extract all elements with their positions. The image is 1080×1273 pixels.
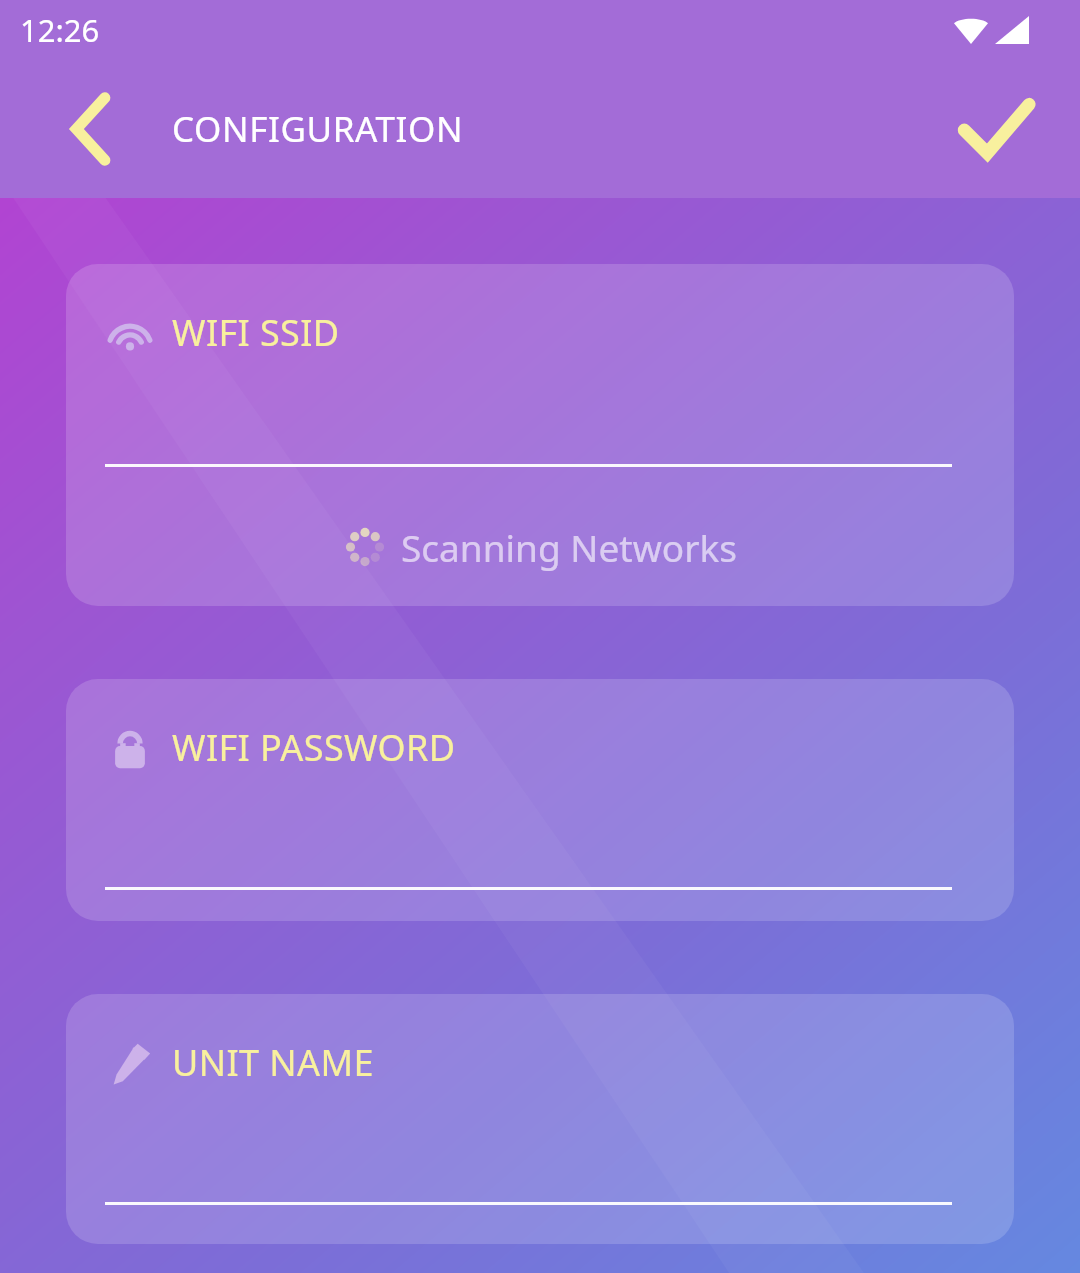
- button[interactable]: UNIT NAME: [66, 994, 1014, 1244]
- staticText: 12:26: [20, 9, 100, 51]
- button[interactable]: WIFI SSID: [66, 264, 1014, 606]
- staticText: UNIT NAME: [172, 1038, 374, 1087]
- staticText: Scanning Networks: [401, 522, 737, 572]
- button[interactable]: Back: [46, 83, 138, 175]
- staticText: CONFIGURATION: [172, 105, 464, 153]
- button[interactable]: Confirm: [948, 81, 1044, 177]
- staticText: WIFI PASSWORD: [172, 723, 456, 772]
- button[interactable]: WIFI PASSWORD: [66, 679, 1014, 921]
- staticText: WIFI SSID: [172, 308, 340, 357]
